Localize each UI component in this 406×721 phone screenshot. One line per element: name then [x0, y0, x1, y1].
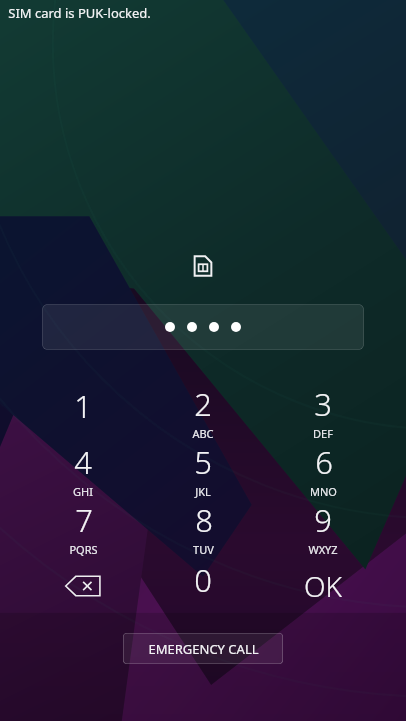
staticText: DEF — [313, 426, 333, 441]
staticText: MNO — [310, 484, 337, 499]
staticText: ABC — [192, 426, 214, 441]
button[interactable]: 2 — [143, 383, 263, 441]
staticText: JKL — [195, 484, 211, 499]
button[interactable]: 1 — [23, 383, 143, 441]
staticText: EMERGENCY CALL — [148, 640, 259, 658]
button[interactable]: 6 — [263, 441, 383, 499]
staticText: GHI — [73, 484, 93, 499]
staticText: 7 — [75, 499, 93, 541]
staticText: 5 — [194, 441, 212, 483]
staticText: 1 — [74, 385, 92, 427]
staticText: SIM card is PUK-locked. — [8, 4, 151, 22]
button[interactable]: 0 — [143, 557, 263, 615]
button[interactable]: 5 — [143, 441, 263, 499]
staticText: 2 — [194, 383, 212, 425]
button[interactable]: 7 — [23, 499, 143, 557]
staticText: 8 — [195, 499, 213, 541]
button[interactable]: 4 — [23, 441, 143, 499]
staticText: OK — [304, 567, 342, 605]
staticText: 0 — [194, 559, 212, 601]
button[interactable]: OK — [263, 557, 383, 615]
staticText: PQRS — [69, 542, 98, 557]
staticText: 9 — [314, 499, 332, 541]
staticText: 6 — [315, 441, 333, 483]
button[interactable]: EMERGENCY CALL — [123, 633, 283, 664]
staticText: WXYZ — [308, 542, 338, 557]
button[interactable]: 8 — [143, 499, 263, 557]
staticText: 3 — [314, 383, 332, 425]
button[interactable]: 3 — [263, 383, 383, 441]
button[interactable]: Delete — [23, 557, 143, 615]
button[interactable] — [42, 304, 364, 350]
button[interactable]: 9 — [263, 499, 383, 557]
staticText: 4 — [74, 441, 92, 483]
staticText: TUV — [193, 542, 214, 557]
